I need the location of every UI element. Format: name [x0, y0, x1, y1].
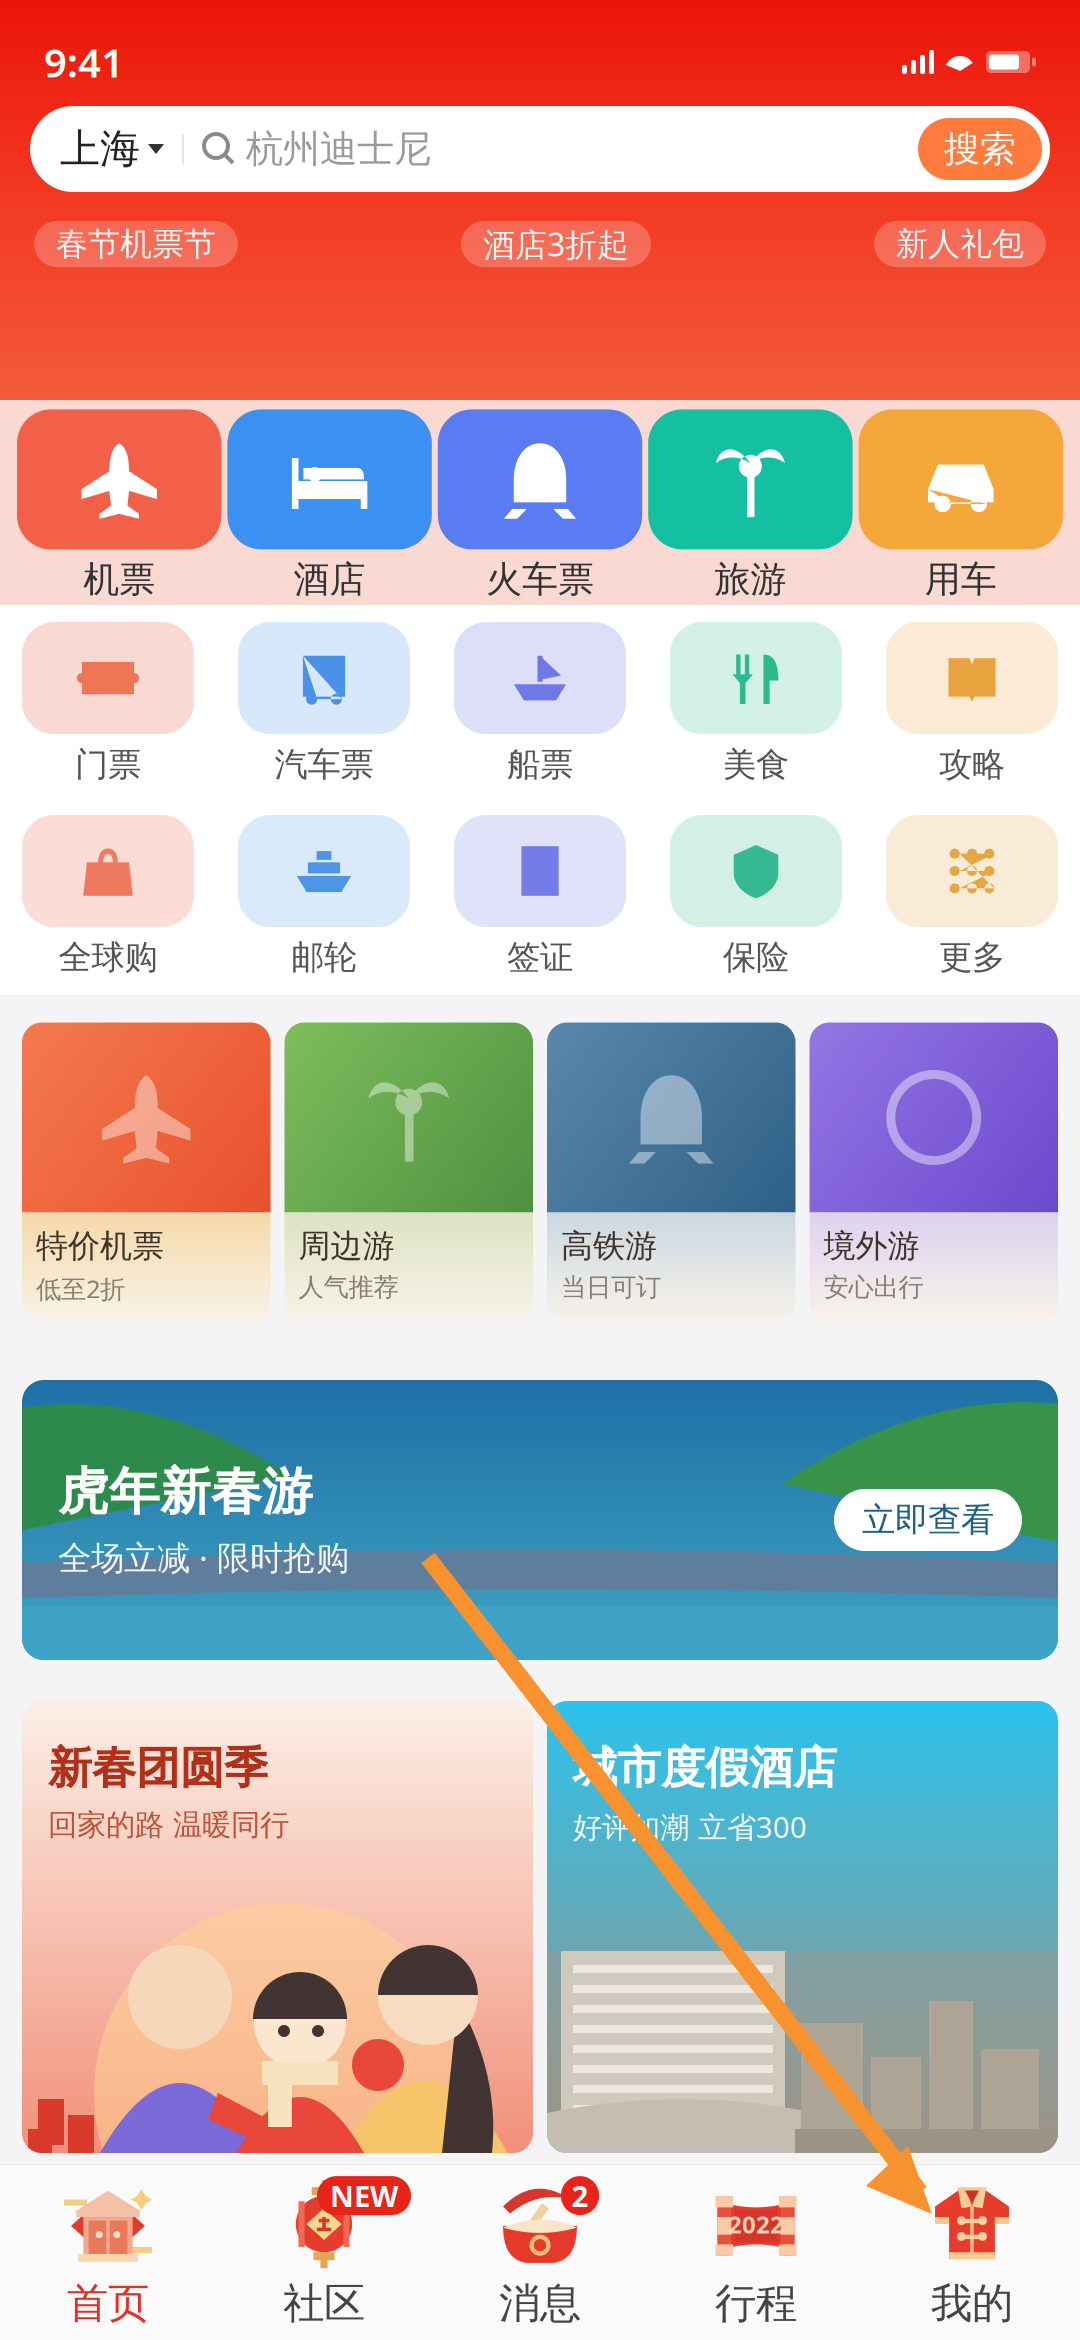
staticText: 首页 [67, 2278, 149, 2329]
staticText: 全球购 [58, 937, 157, 978]
staticText: 安心出行 [823, 1272, 923, 1303]
button[interactable]: 邮轮 [216, 815, 432, 978]
staticText: 特价机票 [36, 1226, 164, 1266]
button[interactable]: 全球购 [0, 815, 216, 978]
staticText: 上海 [60, 124, 140, 173]
staticText: 虎年新春游 [58, 1461, 313, 1523]
button[interactable]: NEW [216, 2176, 432, 2329]
button[interactable]: 2022 [648, 2176, 864, 2329]
staticText: 境外游 [823, 1226, 919, 1266]
staticText: 机票 [83, 557, 155, 602]
button[interactable]: 更多 [864, 815, 1080, 978]
staticText: 好评如潮 立省300 [573, 1807, 807, 1846]
staticText: 酒店3折起 [483, 223, 629, 265]
button[interactable]: 酒店3折起 [461, 221, 651, 267]
button[interactable]: 上海 [0, 106, 1080, 192]
button[interactable]: 美食 [648, 622, 864, 785]
button[interactable]: 汽车票 [216, 622, 432, 785]
button[interactable]: 门票 [0, 622, 216, 785]
staticText: 低至2折 [36, 1272, 125, 1305]
staticText: 美食 [723, 744, 789, 785]
button[interactable]: 船票 [432, 622, 648, 785]
staticText: 当日可订 [561, 1272, 661, 1303]
staticText: 全场立减 · 限时抢购 [58, 1535, 349, 1579]
button[interactable]: 保险 [648, 815, 864, 978]
staticText: 2022 [728, 2208, 784, 2240]
staticText: 保险 [723, 937, 789, 978]
staticText: 行程 [715, 2278, 797, 2329]
staticText: 攻略 [939, 744, 1005, 785]
button[interactable]: 周边游 [284, 1022, 533, 1322]
staticText: 酒店 [294, 557, 366, 602]
button[interactable]: 新春团圆季 [22, 1701, 533, 2153]
staticText: 签证 [507, 937, 573, 978]
staticText: 更多 [939, 937, 1005, 978]
staticText: 2 [571, 2176, 588, 2215]
staticText: 杭州迪士尼 [246, 126, 431, 172]
button[interactable]: 春节机票节 [34, 221, 238, 267]
button[interactable]: 用车 [856, 395, 1066, 610]
staticText: 火车票 [486, 557, 594, 602]
staticText: 回家的路 温暖同行 [48, 1807, 289, 1843]
staticText: 社区 [283, 2278, 365, 2329]
staticText: 门票 [75, 744, 141, 785]
staticText: 新春团圆季 [48, 1741, 268, 1795]
staticText: 周边游 [298, 1226, 394, 1266]
staticText: 汽车票 [274, 744, 373, 785]
staticText: 人气推荐 [298, 1272, 398, 1303]
button[interactable]: 首页 [0, 2176, 216, 2329]
staticText: NEW [330, 2176, 398, 2215]
staticText: 立即查看 [862, 1499, 994, 1540]
button[interactable]: 特价机票 [22, 1022, 270, 1322]
staticText: 9:41 [44, 35, 124, 88]
button[interactable]: 签证 [432, 815, 648, 978]
staticText: 春节机票节 [56, 224, 216, 264]
staticText: 邮轮 [291, 937, 357, 978]
button[interactable]: 境外游 [809, 1022, 1058, 1322]
staticText: 新人礼包 [896, 224, 1024, 264]
button[interactable]: 旅游 [645, 395, 856, 610]
button[interactable]: 机票 [14, 395, 224, 610]
button[interactable]: 2 [432, 2176, 648, 2329]
button[interactable]: 火车票 [435, 395, 645, 610]
staticText: 高铁游 [561, 1226, 657, 1266]
staticText: 城市度假酒店 [573, 1741, 837, 1795]
button[interactable]: 攻略 [864, 622, 1080, 785]
staticText: 搜索 [944, 127, 1016, 171]
staticText: 用车 [925, 557, 997, 602]
button[interactable]: 我的 [864, 2176, 1080, 2329]
staticText: 消息 [499, 2278, 581, 2329]
button[interactable]: 城市度假酒店 [547, 1701, 1058, 2153]
staticText: 船票 [507, 744, 573, 785]
button[interactable]: 新人礼包 [874, 221, 1046, 267]
staticText: 旅游 [714, 557, 786, 602]
button[interactable]: 高铁游 [547, 1022, 795, 1322]
button[interactable]: 酒店 [224, 395, 435, 610]
staticText: 我的 [931, 2278, 1013, 2329]
button[interactable]: 虎年新春游 [0, 1380, 1080, 1660]
